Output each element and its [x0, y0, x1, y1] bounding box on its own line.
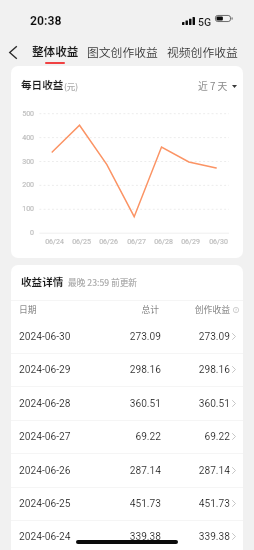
staticText: 2024-06-27	[19, 431, 71, 443]
staticText: 2024-06-25	[19, 498, 71, 510]
staticText: 2024-06-26	[19, 465, 71, 477]
staticText: 06/26	[99, 238, 118, 246]
staticText: 图文创作收益	[87, 43, 158, 60]
staticText: 20:38	[30, 14, 62, 28]
button[interactable]: 2024-06-28	[11, 387, 243, 421]
staticText: 06/28	[154, 238, 173, 246]
button[interactable]: Back	[2, 40, 24, 65]
staticText: 06/29	[181, 238, 200, 246]
button[interactable]: 整体收益	[31, 43, 80, 60]
staticText: 287.14	[198, 465, 230, 477]
staticText: 298.16	[198, 364, 230, 376]
staticText: 创作收益	[194, 303, 230, 316]
button[interactable]: 2024-06-26	[11, 454, 243, 488]
staticText: 400	[22, 134, 34, 142]
staticText: 69.22	[135, 431, 161, 443]
staticText: 近 7 天	[198, 79, 228, 93]
staticText: 339.38	[129, 531, 161, 543]
button[interactable]: 图文创作收益	[87, 43, 158, 60]
staticText: 339.38	[198, 531, 230, 543]
staticText: 整体收益	[32, 43, 79, 60]
staticText: 451.73	[129, 498, 161, 510]
staticText: 360.51	[129, 398, 161, 410]
staticText: 287.14	[129, 465, 161, 477]
button[interactable]: 近 7 天	[197, 79, 238, 93]
button[interactable]: 2024-06-25	[11, 487, 243, 521]
button[interactable]: 2024-06-29	[11, 353, 243, 387]
staticText: 视频创作收益	[167, 43, 238, 60]
staticText: 2024-06-28	[19, 398, 71, 410]
staticText: 298.16	[129, 364, 161, 376]
staticText: (元)	[64, 80, 79, 92]
button[interactable]: 2024-06-24	[11, 520, 243, 550]
staticText: 总计	[141, 303, 159, 316]
staticText: 收益详情	[21, 274, 64, 289]
staticText: 2024-06-29	[19, 364, 71, 376]
button[interactable]: 2024-06-27	[11, 420, 243, 454]
button[interactable]: 2024-06-30	[11, 320, 243, 354]
staticText: 300	[22, 158, 34, 166]
staticText: 06/24	[45, 238, 64, 246]
staticText: 2024-06-30	[19, 331, 71, 343]
staticText: 273.09	[198, 331, 230, 343]
staticText: 每日收益	[21, 77, 64, 92]
staticText: 2024-06-24	[19, 531, 71, 543]
staticText: 100	[22, 205, 34, 213]
staticText: 5G	[198, 16, 212, 28]
staticText: 200	[22, 181, 34, 189]
staticText: 0	[30, 229, 34, 237]
staticText: 06/25	[72, 238, 91, 246]
staticText: 最晚 23:59 前更新	[68, 276, 138, 289]
button[interactable]: 视频创作收益	[167, 43, 238, 60]
staticText: 500	[22, 110, 34, 118]
staticText: 06/30	[209, 238, 228, 246]
staticText: 06/27	[127, 238, 146, 246]
staticText: 451.73	[198, 498, 230, 510]
staticText: 273.09	[129, 331, 161, 343]
staticText: 69.22	[204, 431, 230, 443]
staticText: 360.51	[198, 398, 230, 410]
staticText: 日期	[19, 303, 37, 316]
button[interactable]: 说明	[232, 306, 239, 313]
